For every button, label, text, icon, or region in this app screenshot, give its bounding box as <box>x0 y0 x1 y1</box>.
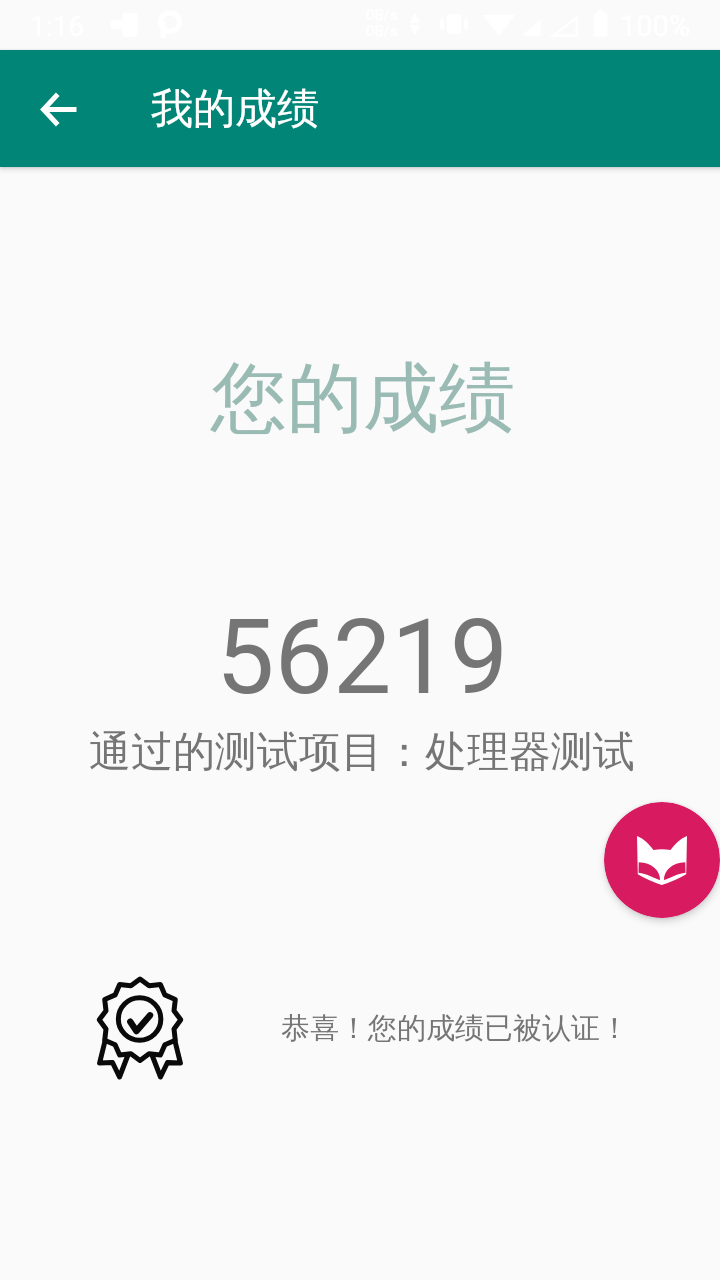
button[interactable]: Back <box>27 77 91 141</box>
staticText: 通过的测试项目：处理器测试 <box>89 726 635 779</box>
staticText: 我的成绩 <box>151 83 319 136</box>
staticText: 您的成绩 <box>211 351 515 447</box>
button[interactable]: Share score <box>604 802 720 918</box>
staticText: 恭喜！您的成绩已被认证！ <box>281 1010 629 1047</box>
staticText: 56219 <box>216 597 509 719</box>
